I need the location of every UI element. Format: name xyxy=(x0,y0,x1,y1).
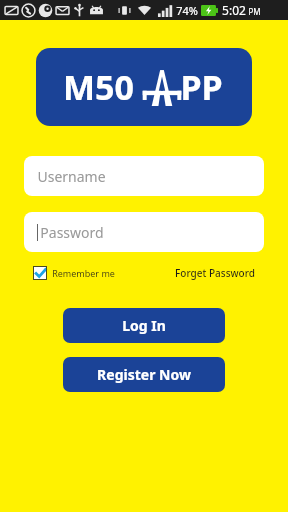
button[interactable]: Register Now xyxy=(63,357,225,392)
staticText: Remember me xyxy=(52,267,115,279)
button[interactable]: Log In xyxy=(63,308,225,343)
button[interactable]: Password xyxy=(24,212,264,252)
staticText: Forget Password xyxy=(175,266,255,280)
staticText: 74% xyxy=(176,3,198,18)
button[interactable]: Forget Password xyxy=(175,266,255,280)
staticText: Username xyxy=(37,167,106,186)
staticText: Log In xyxy=(122,316,166,335)
staticText: PM xyxy=(248,6,261,17)
button[interactable]: Username xyxy=(24,156,264,196)
staticText: M50 xyxy=(63,64,134,110)
button[interactable]: Remember me xyxy=(33,266,115,280)
button[interactable]: M50 APP logo xyxy=(36,48,252,126)
staticText: Register Now xyxy=(97,365,191,384)
staticText: 5:02 xyxy=(222,2,246,18)
staticText: Password xyxy=(40,223,104,242)
staticText: PP xyxy=(180,64,223,110)
